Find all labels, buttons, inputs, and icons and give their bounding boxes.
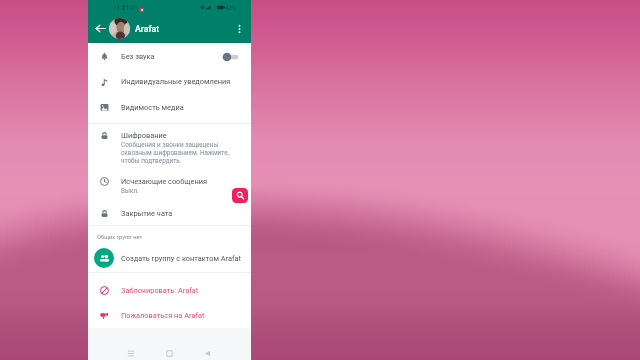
button[interactable] [88, 245, 251, 270]
staticText: Заблокировать: Arafat [121, 286, 199, 295]
button[interactable]: Disappearing messages [88, 172, 251, 197]
button[interactable] [88, 278, 251, 303]
staticText: Видимость медиа [121, 103, 184, 112]
button[interactable] [88, 303, 251, 328]
button[interactable]: Back [93, 21, 108, 36]
staticText: Исчезающие сообщения [121, 177, 208, 186]
staticText: Создать группу с контактом Arafat [121, 254, 241, 263]
button[interactable]: Encryption [88, 126, 251, 163]
button[interactable]: Search [232, 188, 248, 203]
staticText: Выкл. [121, 187, 139, 195]
staticText: 11:51:01 [113, 4, 138, 12]
staticText: Шифрование [121, 131, 167, 140]
staticText: Закрытие чата [121, 209, 173, 218]
button[interactable] [88, 44, 251, 69]
button[interactable]: Recent apps [122, 345, 139, 360]
button[interactable] [88, 69, 251, 94]
staticText: 42% [225, 4, 237, 11]
staticText: Arafat [135, 24, 160, 34]
staticText: Пожаловаться на Arafat [121, 311, 205, 320]
staticText: Сообщения и звонки защищены сквозным шиф… [121, 141, 234, 165]
staticText: Общих групп нет [97, 234, 143, 241]
staticText: Индивидуальные уведомления [121, 77, 231, 86]
button[interactable]: Home [161, 345, 178, 360]
button[interactable]: More options [231, 21, 247, 37]
button[interactable] [88, 95, 251, 120]
button[interactable]: Contact photo [109, 18, 130, 39]
button[interactable]: Back [199, 345, 216, 360]
button[interactable] [88, 201, 251, 226]
staticText: Без звука [121, 52, 155, 61]
